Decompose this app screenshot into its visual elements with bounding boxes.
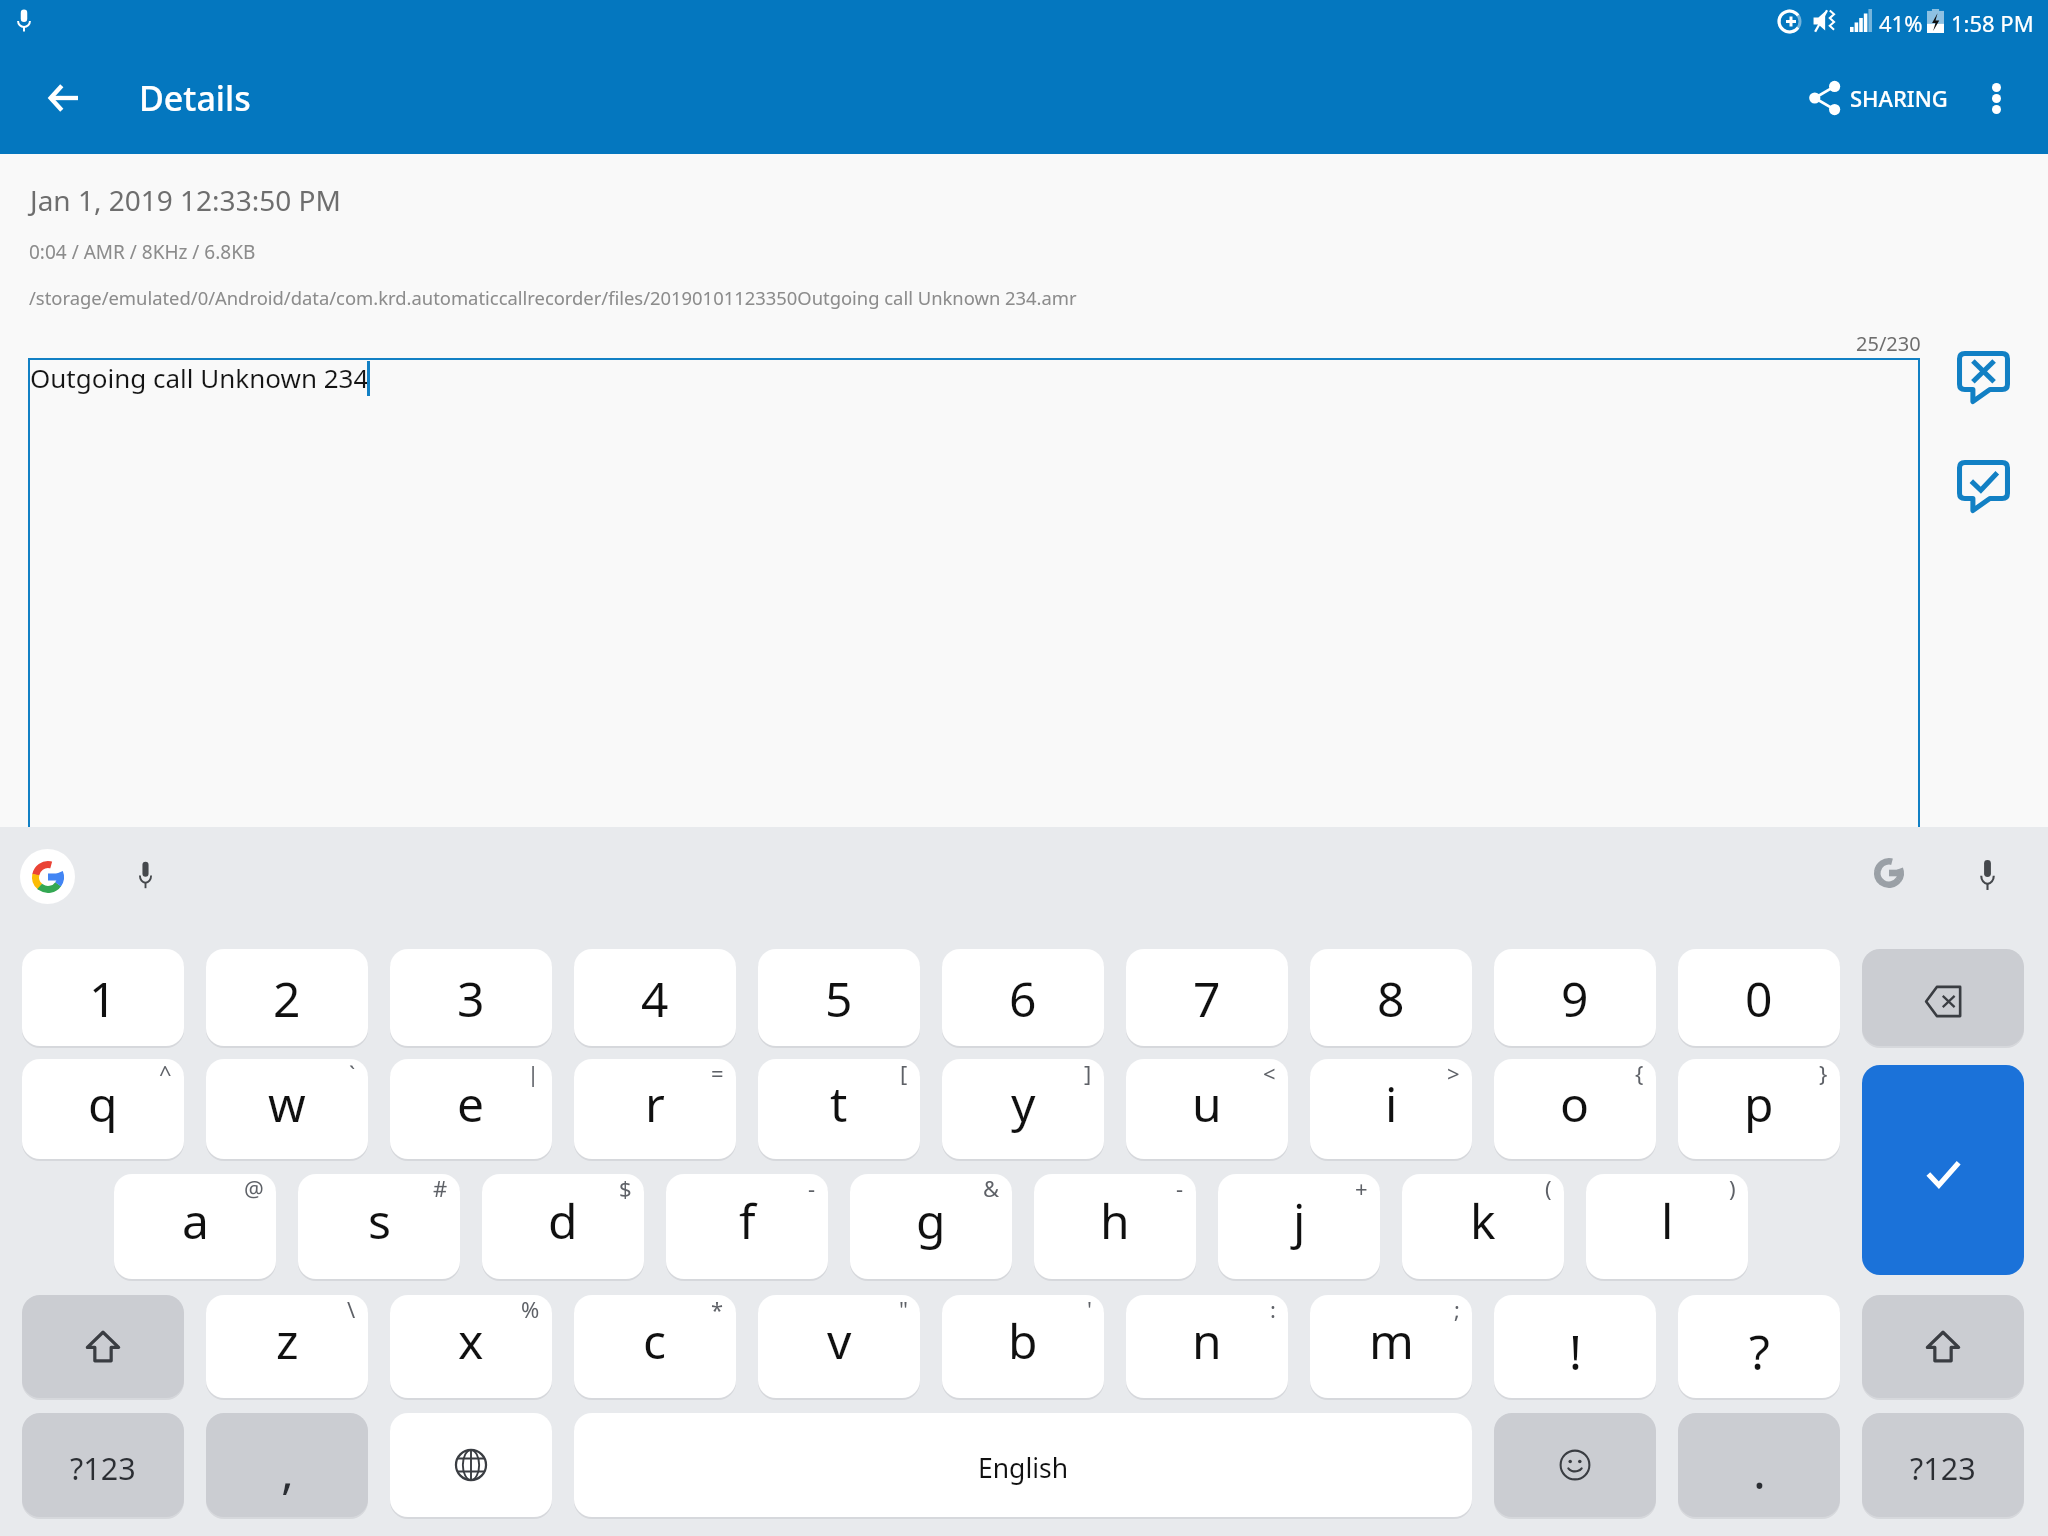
button[interactable]: Discard note: [1947, 341, 2019, 413]
staticText: t: [830, 1071, 848, 1136]
button[interactable]: Voice input: [118, 835, 173, 907]
button[interactable]: 5: [758, 949, 920, 1046]
button[interactable]: c: [574, 1295, 736, 1398]
button[interactable]: 7: [1126, 949, 1288, 1046]
staticText: 5: [825, 966, 853, 1031]
button[interactable]: Voice typing: [1960, 835, 2015, 907]
button[interactable]: w: [206, 1059, 368, 1159]
staticText: 2: [273, 966, 301, 1031]
staticText: }: [1819, 1059, 1828, 1088]
button[interactable]: a: [114, 1174, 276, 1279]
button[interactable]: f: [666, 1174, 828, 1279]
button[interactable]: 4: [574, 949, 736, 1046]
button[interactable]: ?123: [1862, 1413, 2024, 1517]
staticText: English: [978, 1450, 1069, 1486]
staticText: u: [1192, 1071, 1222, 1136]
button[interactable]: h: [1034, 1174, 1196, 1279]
staticText: [: [900, 1059, 908, 1088]
staticText: j: [1293, 1188, 1306, 1253]
button[interactable]: u: [1126, 1059, 1288, 1159]
staticText: o: [1560, 1071, 1590, 1136]
button[interactable]: Back: [31, 66, 95, 130]
staticText: ?: [1749, 1319, 1770, 1384]
button[interactable]: g: [850, 1174, 1012, 1279]
staticText: -: [808, 1174, 816, 1203]
button[interactable]: j: [1218, 1174, 1380, 1279]
button[interactable]: o: [1494, 1059, 1656, 1159]
staticText: SHARING: [1850, 83, 1948, 113]
staticText: h: [1100, 1188, 1130, 1253]
button[interactable]: English: [574, 1413, 1472, 1517]
button[interactable]: Enter: [1862, 1065, 2024, 1275]
button[interactable]: 9: [1494, 949, 1656, 1046]
staticText: s: [368, 1188, 391, 1253]
staticText: r: [645, 1071, 665, 1136]
button[interactable]: ?: [1678, 1295, 1840, 1398]
staticText: 41%: [1879, 8, 1923, 38]
button[interactable]: Shift: [1862, 1295, 2024, 1398]
staticText: 25/230: [1856, 330, 1921, 357]
button[interactable]: Language: [390, 1413, 552, 1517]
button[interactable]: s: [298, 1174, 460, 1279]
button[interactable]: ,: [206, 1413, 368, 1517]
staticText: 9: [1561, 966, 1589, 1031]
staticText: l: [1661, 1188, 1674, 1253]
staticText: 8: [1377, 966, 1405, 1031]
staticText: m: [1369, 1308, 1414, 1373]
staticText: v: [827, 1308, 852, 1373]
button[interactable]: 0: [1678, 949, 1840, 1046]
button[interactable]: z: [206, 1295, 368, 1398]
staticText: g: [916, 1188, 946, 1253]
staticText: #: [433, 1174, 448, 1203]
button[interactable]: 1: [22, 949, 184, 1046]
button[interactable]: y: [942, 1059, 1104, 1159]
button[interactable]: b: [942, 1295, 1104, 1398]
staticText: <: [1263, 1059, 1276, 1088]
button[interactable]: 2: [206, 949, 368, 1046]
staticText: `: [349, 1059, 356, 1088]
staticText: :: [1270, 1295, 1276, 1324]
button[interactable]: p: [1678, 1059, 1840, 1159]
button[interactable]: l: [1586, 1174, 1748, 1279]
staticText: ]: [1084, 1059, 1092, 1088]
staticText: w: [268, 1071, 306, 1136]
button[interactable]: t: [758, 1059, 920, 1159]
staticText: f: [739, 1188, 756, 1253]
button[interactable]: Backspace: [1862, 949, 2024, 1046]
staticText: !: [1569, 1319, 1582, 1384]
button[interactable]: More options: [1964, 66, 2028, 130]
button[interactable]: ?123: [22, 1413, 184, 1517]
button[interactable]: d: [482, 1174, 644, 1279]
button[interactable]: .: [1678, 1413, 1840, 1517]
staticText: .: [1753, 1438, 1766, 1503]
button[interactable]: Emoji: [1494, 1413, 1656, 1517]
button[interactable]: !: [1494, 1295, 1656, 1398]
button[interactable]: m: [1310, 1295, 1472, 1398]
button[interactable]: Google Search: [20, 849, 75, 904]
staticText: n: [1192, 1308, 1222, 1373]
button[interactable]: k: [1402, 1174, 1564, 1279]
button[interactable]: i: [1310, 1059, 1472, 1159]
staticText: 1: [89, 966, 117, 1031]
staticText: z: [276, 1308, 299, 1373]
staticText: @: [244, 1174, 264, 1203]
staticText: >: [1447, 1059, 1460, 1088]
staticText: d: [548, 1188, 578, 1253]
staticText: p: [1744, 1071, 1774, 1136]
staticText: /storage/emulated/0/Android/data/com.krd…: [29, 285, 1077, 310]
button[interactable]: x: [390, 1295, 552, 1398]
button[interactable]: Save note: [1947, 450, 2019, 522]
button[interactable]: 3: [390, 949, 552, 1046]
staticText: ": [899, 1295, 908, 1324]
button[interactable]: r: [574, 1059, 736, 1159]
staticText: +: [1355, 1174, 1368, 1203]
button[interactable]: n: [1126, 1295, 1288, 1398]
button[interactable]: 8: [1310, 949, 1472, 1046]
button[interactable]: e: [390, 1059, 552, 1159]
button[interactable]: Shift: [22, 1295, 184, 1398]
button[interactable]: q: [22, 1059, 184, 1159]
button[interactable]: v: [758, 1295, 920, 1398]
staticText: ?123: [70, 1447, 136, 1489]
button[interactable]: 6: [942, 949, 1104, 1046]
button[interactable]: SHARING: [1795, 68, 1962, 128]
